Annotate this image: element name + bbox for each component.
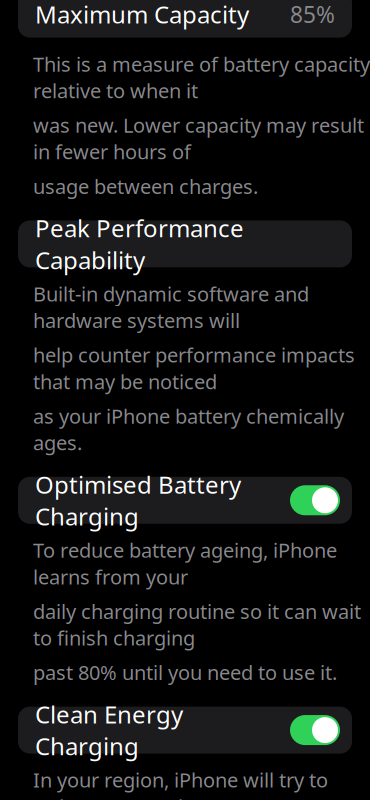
staticText: Peak Performance Capability [35, 212, 244, 276]
button[interactable]: Maximum Capacity [18, 0, 352, 38]
staticText: was new. Lower capacity may result in fe… [33, 112, 364, 165]
button[interactable]: Peak Performance Capability [18, 220, 352, 267]
staticText: Built-in dynamic software and hardware s… [33, 280, 309, 333]
staticText: as your iPhone battery chemically ages. [33, 403, 344, 456]
staticText: 85% [290, 0, 335, 29]
staticText: Optimised Battery Charging [35, 468, 241, 532]
staticText: past 80% until you need to use it. [33, 659, 337, 686]
staticText: daily charging routine so it can wait to… [33, 598, 361, 651]
staticText: In your region, iPhone will try to reduc… [33, 767, 328, 800]
button[interactable]: Clean Energy Charging [18, 707, 352, 754]
button[interactable]: Optimised Battery Charging [18, 477, 352, 524]
staticText: help counter performance impacts that ma… [33, 341, 355, 395]
staticText: Maximum Capacity [35, 0, 249, 30]
staticText: This is a measure of battery capacity re… [33, 51, 370, 104]
staticText: To reduce battery ageing, iPhone learns … [33, 537, 337, 590]
staticText: Clean Energy Charging [35, 698, 183, 762]
staticText: usage between charges. [33, 173, 258, 199]
